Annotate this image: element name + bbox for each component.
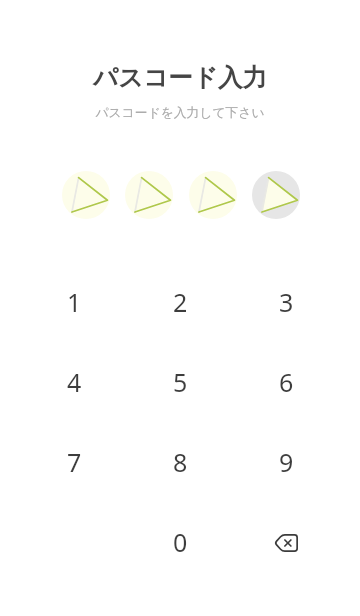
staticText: 2 [173, 285, 188, 319]
staticText: パスコードを入力して下さい [0, 105, 360, 121]
button[interactable]: 3 [233, 262, 339, 342]
staticText: 5 [173, 365, 188, 399]
button[interactable]: 6 [233, 342, 339, 422]
button[interactable]: 5 [127, 342, 233, 422]
button[interactable]: 8 [127, 422, 233, 502]
staticText: 6 [279, 365, 294, 399]
staticText: パスコード入力 [0, 62, 360, 93]
button[interactable]: Delete [233, 502, 339, 582]
staticText: 8 [173, 445, 188, 479]
staticText: 3 [279, 285, 294, 319]
other: Delete [274, 534, 298, 552]
button[interactable]: 7 [21, 422, 127, 502]
staticText: 4 [67, 365, 82, 399]
button[interactable]: 9 [233, 422, 339, 502]
button[interactable]: 4 [21, 342, 127, 422]
button[interactable]: 2 [127, 262, 233, 342]
staticText: 0 [173, 525, 188, 559]
button[interactable]: 0 [127, 502, 233, 582]
button[interactable]: 1 [21, 262, 127, 342]
staticText: 9 [279, 445, 294, 479]
staticText: 7 [67, 445, 82, 479]
staticText: 1 [67, 285, 82, 319]
